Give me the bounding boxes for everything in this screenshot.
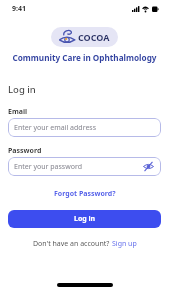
- button[interactable]: Enter your password: [8, 157, 161, 176]
- button[interactable]: Forgot Password?: [54, 189, 116, 199]
- staticText: Enter your email address: [14, 123, 97, 133]
- staticText: Log in: [8, 83, 36, 96]
- button[interactable]: Enter your email address: [8, 118, 161, 137]
- staticText: Don't have an account?: [33, 239, 112, 249]
- button[interactable]: Log in: [8, 210, 161, 228]
- staticText: Community Care in Ophthalmology: [0, 52, 169, 63]
- staticText: Email: [8, 107, 28, 117]
- staticText: COCOA: [78, 31, 110, 43]
- staticText: 9:41: [12, 4, 26, 14]
- staticText: Log in: [74, 214, 96, 224]
- staticText: Enter your password: [14, 162, 82, 172]
- staticText: Password: [8, 146, 42, 156]
- button[interactable]: Sign up: [112, 239, 137, 249]
